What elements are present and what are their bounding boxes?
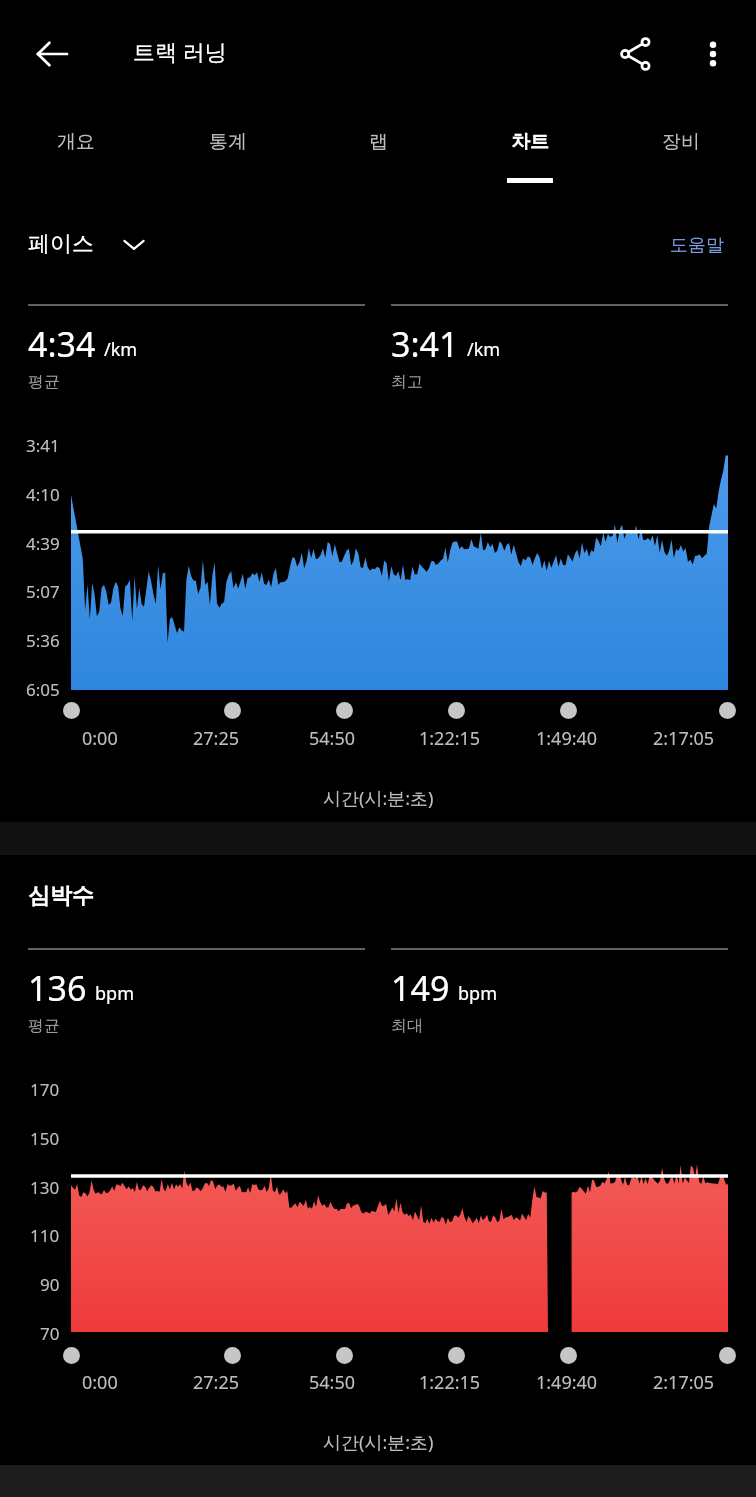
staticText: 136 (28, 965, 87, 1011)
staticText: 3:41 (391, 321, 459, 367)
staticText: 통계 (209, 130, 247, 154)
staticText: 최고 (391, 372, 423, 392)
button[interactable]: More options (681, 22, 745, 86)
staticText: 차트 (511, 130, 549, 154)
button[interactable]: 통계 (152, 116, 303, 196)
staticText: 54:50 (309, 1370, 356, 1395)
button[interactable]: 장비 (605, 116, 756, 196)
staticText: 1:22:15 (419, 726, 481, 751)
staticText: 시간(시:분:초) (323, 786, 434, 811)
staticText: 54:50 (309, 726, 356, 751)
staticText: 도움말 (670, 234, 724, 257)
button[interactable]: 페이스 (28, 230, 146, 258)
staticText: 시간(시:분:초) (323, 1430, 434, 1455)
staticText: 4:34 (28, 321, 96, 367)
staticText: /km (104, 337, 138, 362)
staticText: 0:00 (82, 726, 118, 751)
staticText: 6:05 (26, 678, 60, 701)
staticText: 5:36 (26, 629, 60, 652)
staticText: 4:39 (26, 532, 60, 555)
staticText: 130 (30, 1176, 60, 1199)
staticText: 4:10 (26, 483, 60, 506)
staticText: 1:49:40 (536, 726, 598, 751)
staticText: bpm (95, 981, 134, 1006)
button[interactable]: 차트 (454, 116, 605, 196)
staticText: 0:00 (82, 1370, 118, 1395)
staticText: 개요 (57, 130, 95, 154)
staticText: 27:25 (193, 726, 240, 751)
staticText: 110 (30, 1224, 60, 1247)
staticText: 페이스 (28, 230, 94, 258)
button[interactable]: 개요 (0, 116, 152, 196)
staticText: 90 (40, 1273, 60, 1296)
button[interactable]: Share (600, 18, 672, 90)
staticText: 5:07 (26, 580, 60, 603)
staticText: /km (467, 337, 501, 362)
staticText: 149 (391, 965, 450, 1011)
staticText: 최대 (391, 1016, 423, 1036)
staticText: 27:25 (193, 1370, 240, 1395)
button[interactable]: 랩 (303, 116, 454, 196)
staticText: 평균 (28, 372, 60, 392)
staticText: 트랙 러닝 (133, 36, 227, 66)
staticText: 3:41 (26, 434, 60, 457)
staticText: 1:22:15 (419, 1370, 481, 1395)
staticText: 70 (40, 1322, 60, 1345)
staticText: 2:17:05 (653, 726, 715, 751)
staticText: 2:17:05 (653, 1370, 715, 1395)
staticText: 랩 (369, 130, 388, 154)
staticText: bpm (458, 981, 497, 1006)
staticText: 150 (30, 1127, 60, 1150)
button[interactable]: Back (16, 18, 88, 90)
staticText: 1:49:40 (536, 1370, 598, 1395)
staticText: 평균 (28, 1016, 60, 1036)
staticText: 170 (30, 1078, 60, 1101)
staticText: 장비 (662, 130, 700, 154)
button[interactable]: 도움말 (670, 234, 724, 257)
staticText: 심박수 (28, 882, 94, 910)
